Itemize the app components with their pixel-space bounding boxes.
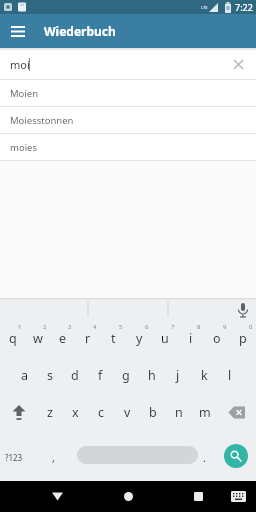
staticText: d (71, 367, 79, 384)
staticText: m (199, 404, 211, 421)
staticText: g (122, 367, 130, 384)
staticText: p (239, 330, 247, 347)
staticText: Moiesstonnen (10, 114, 74, 127)
button[interactable]: b (140, 394, 166, 431)
staticText: o (213, 330, 221, 347)
staticText: w (33, 330, 43, 347)
button[interactable]: n (166, 394, 192, 431)
staticText: . (203, 450, 206, 465)
button[interactable] (111, 481, 145, 512)
button[interactable]: u (152, 320, 178, 357)
staticText: 8 (197, 323, 201, 331)
button[interactable]: k (191, 357, 217, 394)
button[interactable]: o (204, 320, 230, 357)
staticText: e (59, 330, 67, 347)
button[interactable] (181, 481, 215, 512)
staticText: t (111, 330, 116, 347)
button[interactable]: j (165, 357, 191, 394)
staticText: r (85, 330, 91, 347)
button[interactable]: . (194, 437, 214, 477)
button[interactable] (0, 14, 36, 48)
button[interactable] (0, 394, 37, 431)
staticText: 2 (43, 323, 47, 331)
button[interactable]: v (114, 394, 140, 431)
staticText: b (149, 404, 157, 421)
staticText: moi (10, 57, 30, 72)
staticText: j (176, 367, 180, 384)
staticText: v (124, 404, 131, 421)
staticText: h (148, 367, 156, 384)
staticText: 3 (68, 323, 72, 331)
staticText: z (47, 404, 53, 421)
staticText: s (47, 367, 53, 384)
button[interactable]: , (43, 437, 63, 477)
staticText: n (175, 404, 183, 421)
button[interactable]: q (0, 320, 25, 357)
staticText: 1 (18, 323, 22, 331)
button[interactable]: r (75, 320, 100, 357)
button[interactable]: h (139, 357, 165, 394)
staticText: Moien (10, 87, 39, 100)
button[interactable]: p (230, 320, 256, 357)
button[interactable]: s (37, 357, 62, 394)
button[interactable]: c (88, 394, 114, 431)
button[interactable] (77, 446, 198, 464)
staticText: k (201, 367, 208, 384)
staticText: ?123 (5, 452, 23, 463)
button[interactable]: g (113, 357, 139, 394)
staticText: q (9, 330, 17, 347)
staticText: , (52, 450, 55, 465)
button[interactable]: a (12, 357, 37, 394)
button[interactable]: z (37, 394, 62, 431)
button[interactable]: e (50, 320, 75, 357)
button[interactable] (218, 394, 256, 431)
staticText: 9 (223, 323, 227, 331)
button[interactable]: moies (0, 134, 256, 161)
staticText: f (98, 367, 103, 384)
staticText: moies (10, 141, 37, 154)
staticText: c (98, 404, 105, 421)
staticText: 7 (171, 323, 175, 331)
staticText: LTE (201, 5, 208, 10)
button[interactable]: f (87, 357, 113, 394)
button[interactable]: ?123 (0, 437, 28, 477)
button[interactable] (224, 444, 248, 468)
button[interactable]: moi (0, 48, 256, 80)
button[interactable]: i (178, 320, 204, 357)
staticText: 0 (249, 323, 253, 331)
staticText: Wiederbuch (44, 23, 116, 39)
button[interactable]: y (126, 320, 152, 357)
button[interactable] (226, 481, 250, 512)
staticText: 6 (145, 323, 149, 331)
staticText: 5 (119, 323, 123, 331)
button[interactable]: m (192, 394, 218, 431)
staticText: a (21, 367, 29, 384)
button[interactable] (231, 57, 245, 71)
button[interactable] (40, 481, 74, 512)
button[interactable]: x (62, 394, 88, 431)
staticText: x (72, 404, 79, 421)
button[interactable]: t (100, 320, 126, 357)
staticText: 4 (93, 323, 97, 331)
button[interactable]: l (217, 357, 243, 394)
staticText: i (189, 330, 193, 347)
staticText: y (136, 330, 143, 347)
button[interactable]: Moien (0, 80, 256, 107)
button[interactable]: w (25, 320, 50, 357)
staticText: u (161, 330, 169, 347)
button[interactable]: d (62, 357, 87, 394)
staticText: 7:22 (235, 1, 253, 13)
button[interactable]: Moiesstonnen (0, 107, 256, 134)
staticText: l (228, 367, 232, 384)
